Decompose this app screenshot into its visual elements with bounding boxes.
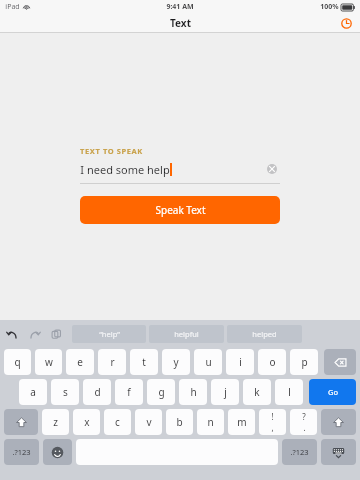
staticText: g — [158, 385, 165, 399]
staticText: .?123 — [12, 447, 31, 457]
button[interactable]: l — [275, 379, 303, 405]
button[interactable]: x — [73, 409, 100, 435]
button[interactable]: k — [243, 379, 271, 405]
button[interactable]: helped — [227, 325, 302, 343]
button[interactable]: .?123 — [4, 439, 39, 465]
staticText: I need some help — [80, 162, 170, 177]
staticText: 9:41 AM — [166, 2, 194, 12]
button[interactable]: ? — [290, 409, 317, 435]
staticText: .?123 — [290, 447, 309, 457]
staticText: n — [207, 415, 214, 429]
button[interactable]: Paste — [48, 326, 64, 342]
staticText: h — [190, 385, 197, 399]
staticText: f — [127, 385, 131, 399]
staticText: o — [269, 355, 276, 369]
staticText: t — [142, 355, 146, 369]
staticText: 100% — [320, 2, 339, 12]
staticText: q — [14, 355, 21, 369]
staticText: helpful — [174, 329, 199, 339]
staticText: l — [288, 385, 291, 399]
button[interactable]: Redo — [26, 326, 42, 342]
button[interactable]: d — [83, 379, 111, 405]
staticText: Go — [328, 387, 338, 397]
button[interactable]: a — [19, 379, 47, 405]
staticText: c — [115, 415, 120, 429]
button[interactable]: .?123 — [282, 439, 317, 465]
staticText: Speak Text — [155, 203, 206, 217]
staticText: iPad — [5, 2, 20, 12]
button[interactable]: q — [4, 349, 31, 375]
button[interactable]: Shift — [321, 409, 356, 435]
button[interactable]: j — [211, 379, 239, 405]
button[interactable]: y — [162, 349, 190, 375]
staticText: . — [303, 422, 306, 433]
button[interactable]: g — [147, 379, 175, 405]
staticText: u — [205, 355, 212, 369]
staticText: helped — [252, 329, 277, 339]
staticText: ? — [302, 411, 306, 422]
button[interactable]: Shift — [4, 409, 38, 435]
button[interactable]: b — [166, 409, 193, 435]
button[interactable]: w — [35, 349, 62, 375]
button[interactable]: helpful — [149, 325, 224, 343]
button[interactable]: n — [197, 409, 224, 435]
staticText: b — [176, 415, 183, 429]
staticText: Text — [170, 16, 191, 30]
staticText: m — [237, 415, 247, 429]
button[interactable]: z — [42, 409, 69, 435]
button[interactable]: Undo — [4, 326, 20, 342]
staticText: d — [94, 385, 101, 399]
button[interactable]: m — [228, 409, 255, 435]
button[interactable]: p — [290, 349, 318, 375]
button[interactable]: v — [135, 409, 162, 435]
button[interactable]: c — [104, 409, 131, 435]
button[interactable]: t — [130, 349, 158, 375]
staticText: “help” — [99, 329, 120, 339]
button[interactable]: ! — [259, 409, 286, 435]
button[interactable]: h — [179, 379, 207, 405]
staticText: s — [63, 385, 68, 399]
button[interactable]: r — [98, 349, 126, 375]
staticText: v — [146, 415, 152, 429]
staticText: TEXT TO SPEAK — [80, 146, 143, 156]
staticText: p — [301, 355, 308, 369]
staticText: ! — [271, 411, 274, 422]
button[interactable]: o — [258, 349, 286, 375]
button[interactable]: u — [194, 349, 222, 375]
staticText: r — [110, 355, 115, 369]
button[interactable]: Speak Text — [80, 196, 280, 224]
staticText: z — [53, 415, 58, 429]
button[interactable]: Backspace — [324, 349, 356, 375]
staticText: x — [84, 415, 90, 429]
staticText: e — [77, 355, 83, 369]
staticText: w — [45, 355, 53, 369]
staticText: j — [224, 385, 227, 399]
button[interactable]: i — [226, 349, 254, 375]
button[interactable]: Emoji — [43, 439, 72, 465]
staticText: a — [30, 385, 36, 399]
staticText: i — [239, 355, 242, 369]
button[interactable]: “help” — [72, 325, 146, 343]
staticText: y — [173, 355, 179, 369]
button[interactable]: e — [66, 349, 94, 375]
staticText: , — [271, 422, 274, 433]
button[interactable]: f — [115, 379, 143, 405]
button[interactable]: History — [338, 15, 354, 31]
button[interactable]: Go — [309, 379, 356, 405]
button[interactable]: Clear text — [264, 161, 280, 177]
staticText: k — [254, 385, 260, 399]
button[interactable]: Hide keyboard — [321, 439, 356, 465]
button[interactable]: s — [51, 379, 79, 405]
